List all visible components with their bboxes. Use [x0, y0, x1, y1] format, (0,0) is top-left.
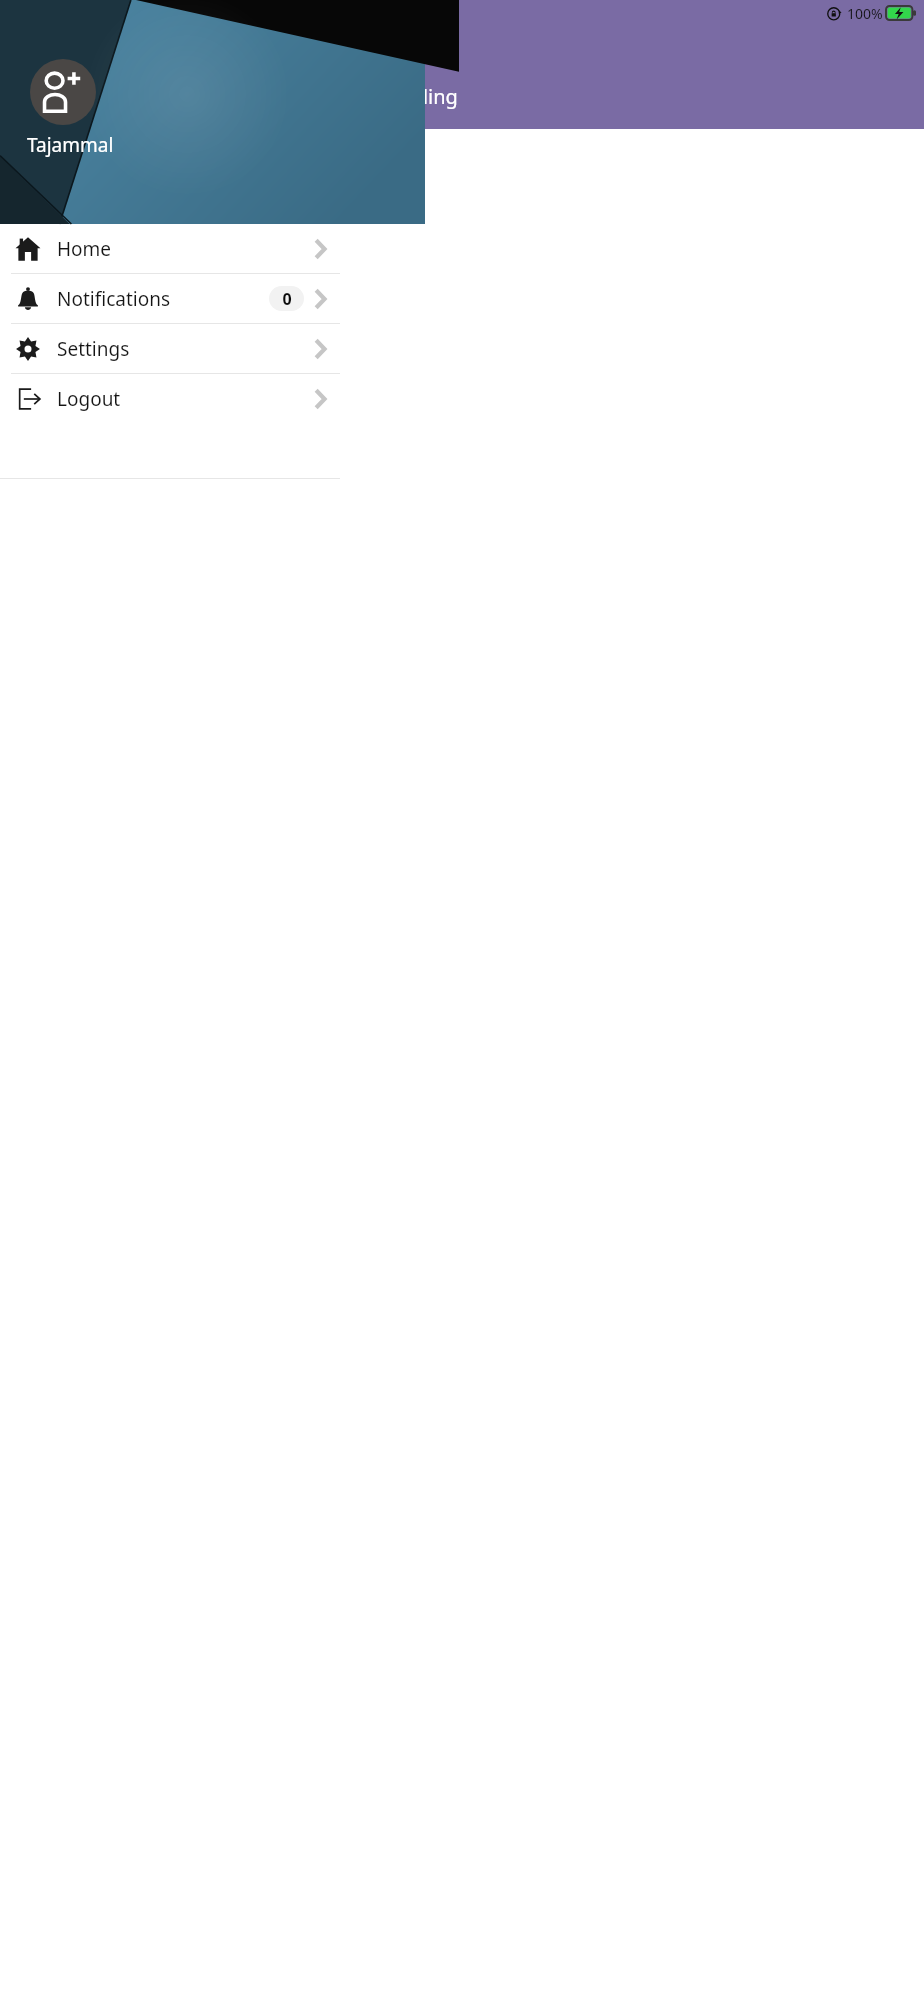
button[interactable]: Profile picture	[30, 59, 96, 125]
staticText: Home	[57, 236, 112, 262]
button[interactable]: Settings	[0, 324, 340, 373]
staticText: Tajammal	[27, 132, 114, 158]
button[interactable]: Open navigation menu	[362, 28, 402, 68]
staticText: Pending	[380, 83, 458, 110]
staticText: 0	[282, 288, 292, 310]
staticText: 100%	[847, 4, 883, 23]
button[interactable]: Home	[0, 224, 340, 273]
staticText: Logout	[57, 386, 121, 412]
button[interactable]: Logout	[0, 374, 340, 423]
staticText: Notifications	[57, 286, 171, 312]
button[interactable]: Notifications	[0, 274, 340, 323]
staticText: Settings	[57, 336, 130, 362]
